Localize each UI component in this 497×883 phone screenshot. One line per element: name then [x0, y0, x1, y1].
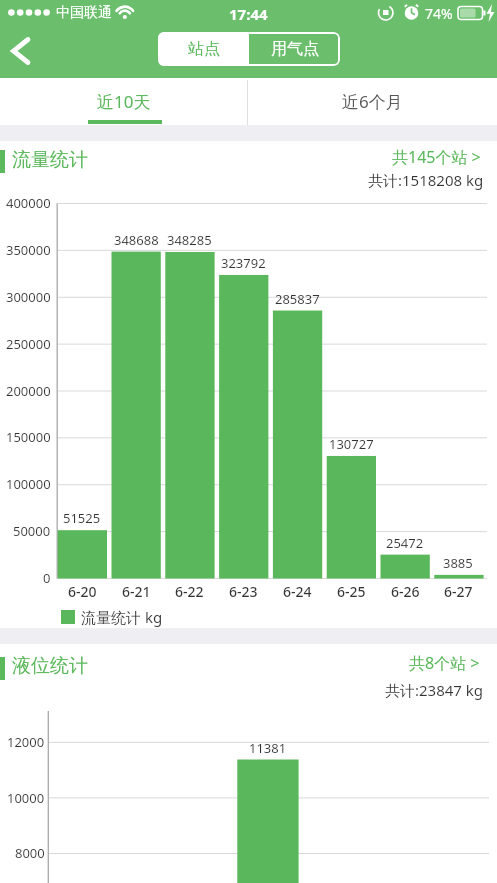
- staticText: 中国联通: [56, 4, 112, 22]
- staticText: 流量统计: [12, 148, 88, 172]
- staticText: 323792: [221, 254, 266, 272]
- staticText: 50000: [13, 522, 51, 540]
- staticText: 6-22: [175, 582, 204, 601]
- staticText: 350000: [6, 241, 51, 259]
- staticText: 130727: [329, 435, 374, 453]
- staticText: 6-21: [122, 582, 151, 601]
- staticText: 6-24: [283, 582, 312, 601]
- staticText: 348688: [114, 231, 159, 249]
- staticText: 6-25: [337, 582, 366, 601]
- staticText: 近6个月: [342, 90, 403, 113]
- staticText: 11381: [249, 739, 287, 757]
- staticText: 6-27: [444, 582, 473, 601]
- staticText: 近10天: [97, 90, 151, 113]
- staticText: 74%: [425, 4, 453, 23]
- button[interactable]: 共8个站 >: [409, 652, 480, 674]
- button[interactable]: 用气点: [249, 32, 340, 66]
- staticText: 100000: [6, 475, 51, 493]
- staticText: 用气点: [271, 39, 319, 59]
- staticText: 共计:1518208 kg: [368, 170, 484, 190]
- staticText: 共计:23847 kg: [385, 680, 484, 700]
- staticText: 400000: [6, 194, 51, 212]
- staticText: 站点: [188, 39, 220, 59]
- staticText: 6-26: [391, 582, 420, 601]
- button[interactable]: 共145个站 >: [392, 146, 481, 168]
- staticText: 150000: [6, 428, 51, 446]
- staticText: 250000: [6, 335, 51, 353]
- button[interactable]: 近6个月: [248, 78, 497, 125]
- staticText: 液位统计: [12, 654, 88, 678]
- button[interactable]: 站点: [158, 32, 249, 66]
- staticText: 285837: [275, 290, 320, 308]
- staticText: 51525: [63, 509, 101, 527]
- staticText: 6-23: [229, 582, 258, 601]
- staticText: 300000: [6, 288, 51, 306]
- staticText: 3885: [443, 554, 473, 572]
- staticText: 10000: [7, 789, 45, 807]
- button[interactable]: [0, 30, 44, 74]
- staticText: 流量统计 kg: [81, 607, 163, 627]
- staticText: 6-20: [68, 582, 97, 601]
- button[interactable]: 近10天: [0, 78, 248, 125]
- staticText: 25472: [386, 534, 424, 552]
- staticText: 17:44: [229, 4, 268, 24]
- staticText: 8000: [15, 844, 45, 862]
- staticText: 348285: [167, 231, 212, 249]
- staticText: 200000: [6, 382, 51, 400]
- staticText: 12000: [7, 733, 45, 751]
- staticText: 0: [43, 569, 51, 587]
